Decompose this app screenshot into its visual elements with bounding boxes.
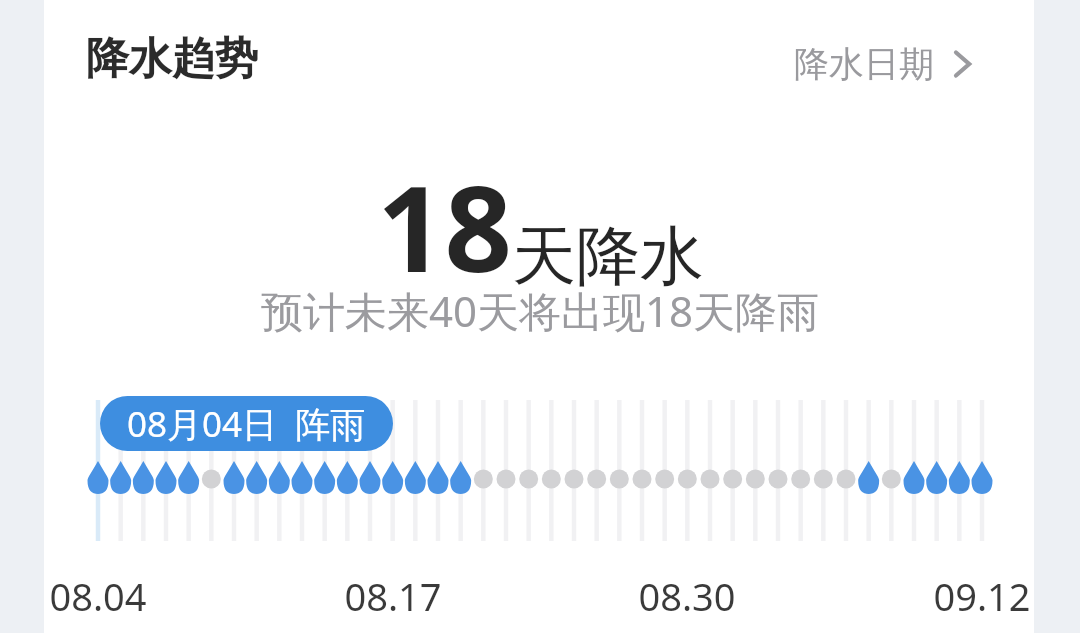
button[interactable]: 降水趋势 (80, 26, 264, 92)
staticText: 09.12 (912, 570, 1052, 622)
staticText: 08.30 (617, 570, 757, 622)
staticText: 08.17 (323, 570, 463, 622)
button[interactable]: 08月04日 阵雨 (100, 396, 393, 451)
staticText: 降水趋势 (86, 32, 258, 86)
staticText: 天降水 (512, 216, 704, 297)
other: 40 day precipitation chart (0, 0, 1080, 633)
staticText: 预计未来40天将出现18天降雨 (0, 282, 1080, 339)
staticText: 18 (377, 146, 512, 307)
staticText: 08.04 (28, 570, 168, 622)
staticText: 08月04日 阵雨 (127, 400, 366, 448)
button[interactable]: 降水日期 (788, 34, 964, 94)
staticText: 降水日期 (794, 42, 934, 86)
